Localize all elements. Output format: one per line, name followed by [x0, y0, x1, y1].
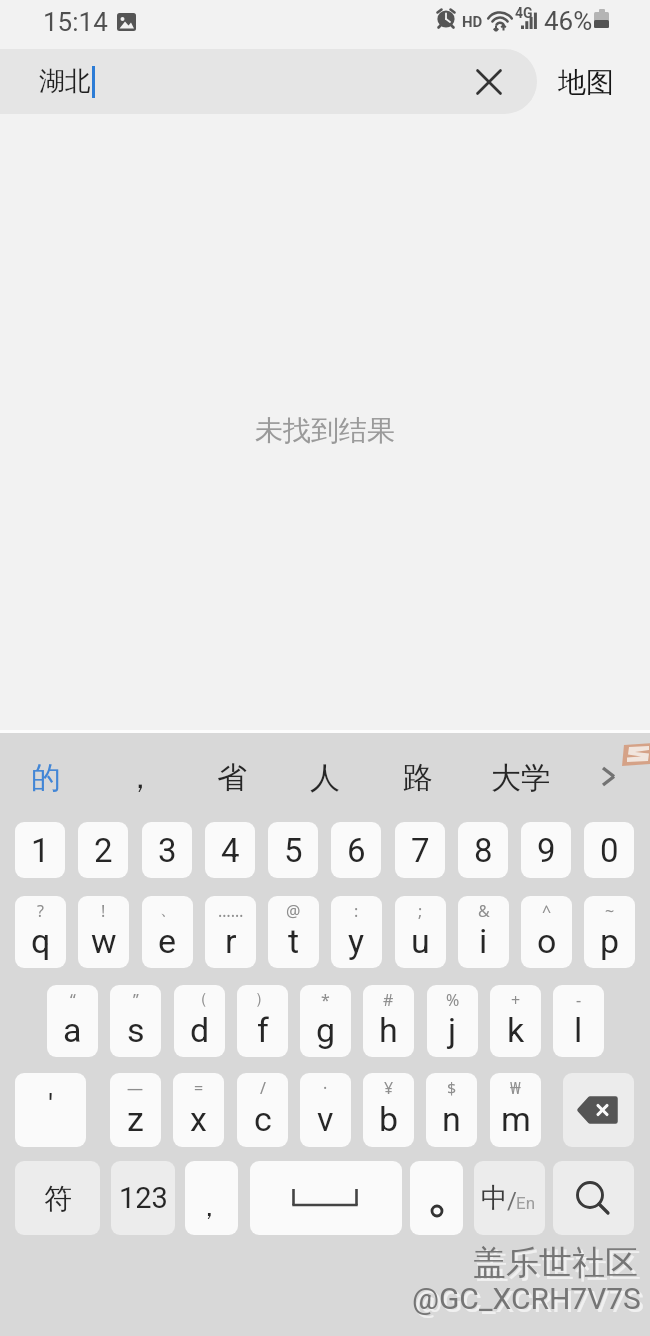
button[interactable]: ”: [110, 985, 161, 1057]
button[interactable]: 湖北: [0, 49, 537, 114]
button[interactable]: ¥: [363, 1073, 414, 1147]
staticText: HD: [462, 13, 483, 31]
staticText: 15:14: [43, 7, 108, 37]
button[interactable]: Search: [553, 1161, 634, 1235]
staticText: e: [158, 921, 177, 961]
button[interactable]: “: [47, 985, 98, 1057]
button[interactable]: 省: [201, 749, 263, 807]
button[interactable]: /: [237, 1073, 288, 1147]
staticText: u: [411, 921, 430, 961]
button[interactable]: ₩: [490, 1073, 541, 1147]
button[interactable]: ）: [237, 985, 288, 1057]
staticText: /: [507, 1187, 517, 1215]
button[interactable]: 7: [395, 822, 445, 878]
staticText: ~: [605, 900, 615, 922]
staticText: p: [600, 921, 620, 961]
staticText: l: [574, 1010, 583, 1050]
staticText: 123: [119, 1181, 168, 1215]
button[interactable]: *: [300, 985, 351, 1057]
button[interactable]: 8: [458, 822, 508, 878]
staticText: j: [448, 1010, 457, 1050]
staticText: d: [190, 1010, 210, 1050]
button[interactable]: !: [78, 896, 129, 968]
staticText: 4G: [515, 5, 533, 21]
staticText: y: [348, 921, 365, 961]
staticText: m: [501, 1099, 531, 1139]
staticText: ?: [37, 900, 44, 922]
button[interactable]: 4: [205, 822, 255, 878]
button[interactable]: 、: [142, 896, 193, 968]
button[interactable]: :: [331, 896, 382, 968]
button[interactable]: ，: [185, 1161, 238, 1235]
button[interactable]: 1: [15, 822, 65, 878]
staticText: 6: [347, 831, 366, 870]
staticText: w: [91, 921, 117, 961]
button[interactable]: 5: [268, 822, 318, 878]
button[interactable]: Backspace: [563, 1073, 634, 1147]
staticText: 9: [537, 831, 556, 870]
staticText: =: [194, 1077, 204, 1099]
staticText: &: [478, 900, 490, 922]
button[interactable]: ?: [15, 896, 66, 968]
staticText: @: [286, 900, 301, 922]
staticText: g: [316, 1010, 336, 1050]
staticText: 46%: [544, 6, 593, 36]
button[interactable]: 3: [142, 822, 192, 878]
button[interactable]: 大学: [478, 749, 564, 807]
button[interactable]: ': [15, 1073, 86, 1147]
staticText: ₩: [510, 1077, 521, 1099]
button[interactable]: @: [268, 896, 319, 968]
button[interactable]: 地图: [548, 57, 623, 107]
button[interactable]: Space: [250, 1161, 402, 1235]
button[interactable]: 的: [15, 749, 77, 807]
button[interactable]: ;: [395, 896, 446, 968]
button[interactable]: 2: [78, 822, 128, 878]
staticText: 中: [481, 1181, 508, 1215]
staticText: ，: [196, 1191, 222, 1224]
staticText: ': [48, 1087, 54, 1122]
button[interactable]: -: [553, 985, 604, 1057]
button[interactable]: 人: [294, 749, 356, 807]
staticText: -: [576, 989, 582, 1011]
staticText: k: [507, 1010, 525, 1050]
staticText: t: [288, 921, 300, 961]
staticText: +: [511, 989, 521, 1011]
staticText: “: [70, 989, 76, 1011]
button[interactable]: #: [363, 985, 414, 1057]
staticText: f: [257, 1010, 269, 1050]
button[interactable]: （: [174, 985, 225, 1057]
staticText: 、: [160, 900, 176, 920]
button[interactable]: 路: [387, 749, 449, 807]
button[interactable]: 0: [584, 822, 634, 878]
button[interactable]: ~: [584, 896, 635, 968]
button[interactable]: ·: [300, 1073, 351, 1147]
button[interactable]: ……: [205, 896, 256, 968]
staticText: ;: [418, 900, 423, 922]
button[interactable]: =: [173, 1073, 224, 1147]
staticText: 未找到结果: [255, 413, 395, 448]
button[interactable]: +: [490, 985, 541, 1057]
button[interactable]: 符: [15, 1161, 100, 1235]
button[interactable]: 中: [474, 1161, 545, 1235]
staticText: v: [317, 1099, 334, 1139]
staticText: s: [127, 1010, 145, 1050]
staticText: z: [127, 1099, 144, 1139]
button[interactable]: More candidates: [582, 751, 632, 801]
button[interactable]: %: [427, 985, 478, 1057]
button[interactable]: Clear text: [466, 59, 511, 104]
staticText: ¥: [384, 1077, 394, 1099]
button[interactable]: ^: [521, 896, 572, 968]
button[interactable]: 9: [521, 822, 571, 878]
staticText: q: [31, 921, 51, 961]
button[interactable]: 123: [111, 1161, 175, 1235]
button[interactable]: Period: [410, 1161, 463, 1235]
button[interactable]: &: [458, 896, 509, 968]
button[interactable]: ，: [109, 749, 171, 807]
button[interactable]: $: [426, 1073, 477, 1147]
button[interactable]: 6: [331, 822, 381, 878]
staticText: a: [63, 1010, 82, 1050]
staticText: h: [379, 1010, 398, 1050]
staticText: 地图: [558, 65, 614, 100]
staticText: o: [537, 921, 557, 961]
button[interactable]: —: [110, 1073, 161, 1147]
